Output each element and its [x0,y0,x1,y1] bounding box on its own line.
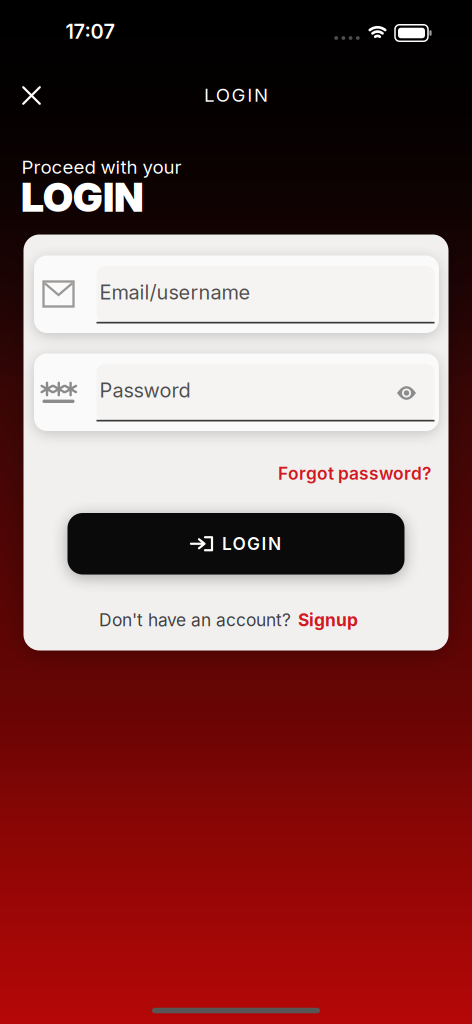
staticText: Don't have an account? [99,610,291,630]
button[interactable]: Show password [391,380,422,405]
staticText: Proceed with your [21,156,181,178]
staticText: 17:07 [65,20,114,43]
staticText: LOGIN [204,84,268,106]
button[interactable]: Password [34,353,439,431]
staticText: LOGIN [21,173,144,221]
button[interactable]: Forgot password? [278,463,431,484]
button[interactable]: Signup [298,610,358,630]
staticText: Email/username [99,280,250,304]
staticText: LOGIN [222,533,281,554]
button[interactable]: Close [13,77,50,114]
button[interactable]: Email/username [34,255,439,333]
staticText: Signup [298,610,358,630]
button[interactable]: LOGIN [67,513,404,574]
staticText: Password [99,378,190,402]
staticText: Forgot password? [278,463,431,484]
